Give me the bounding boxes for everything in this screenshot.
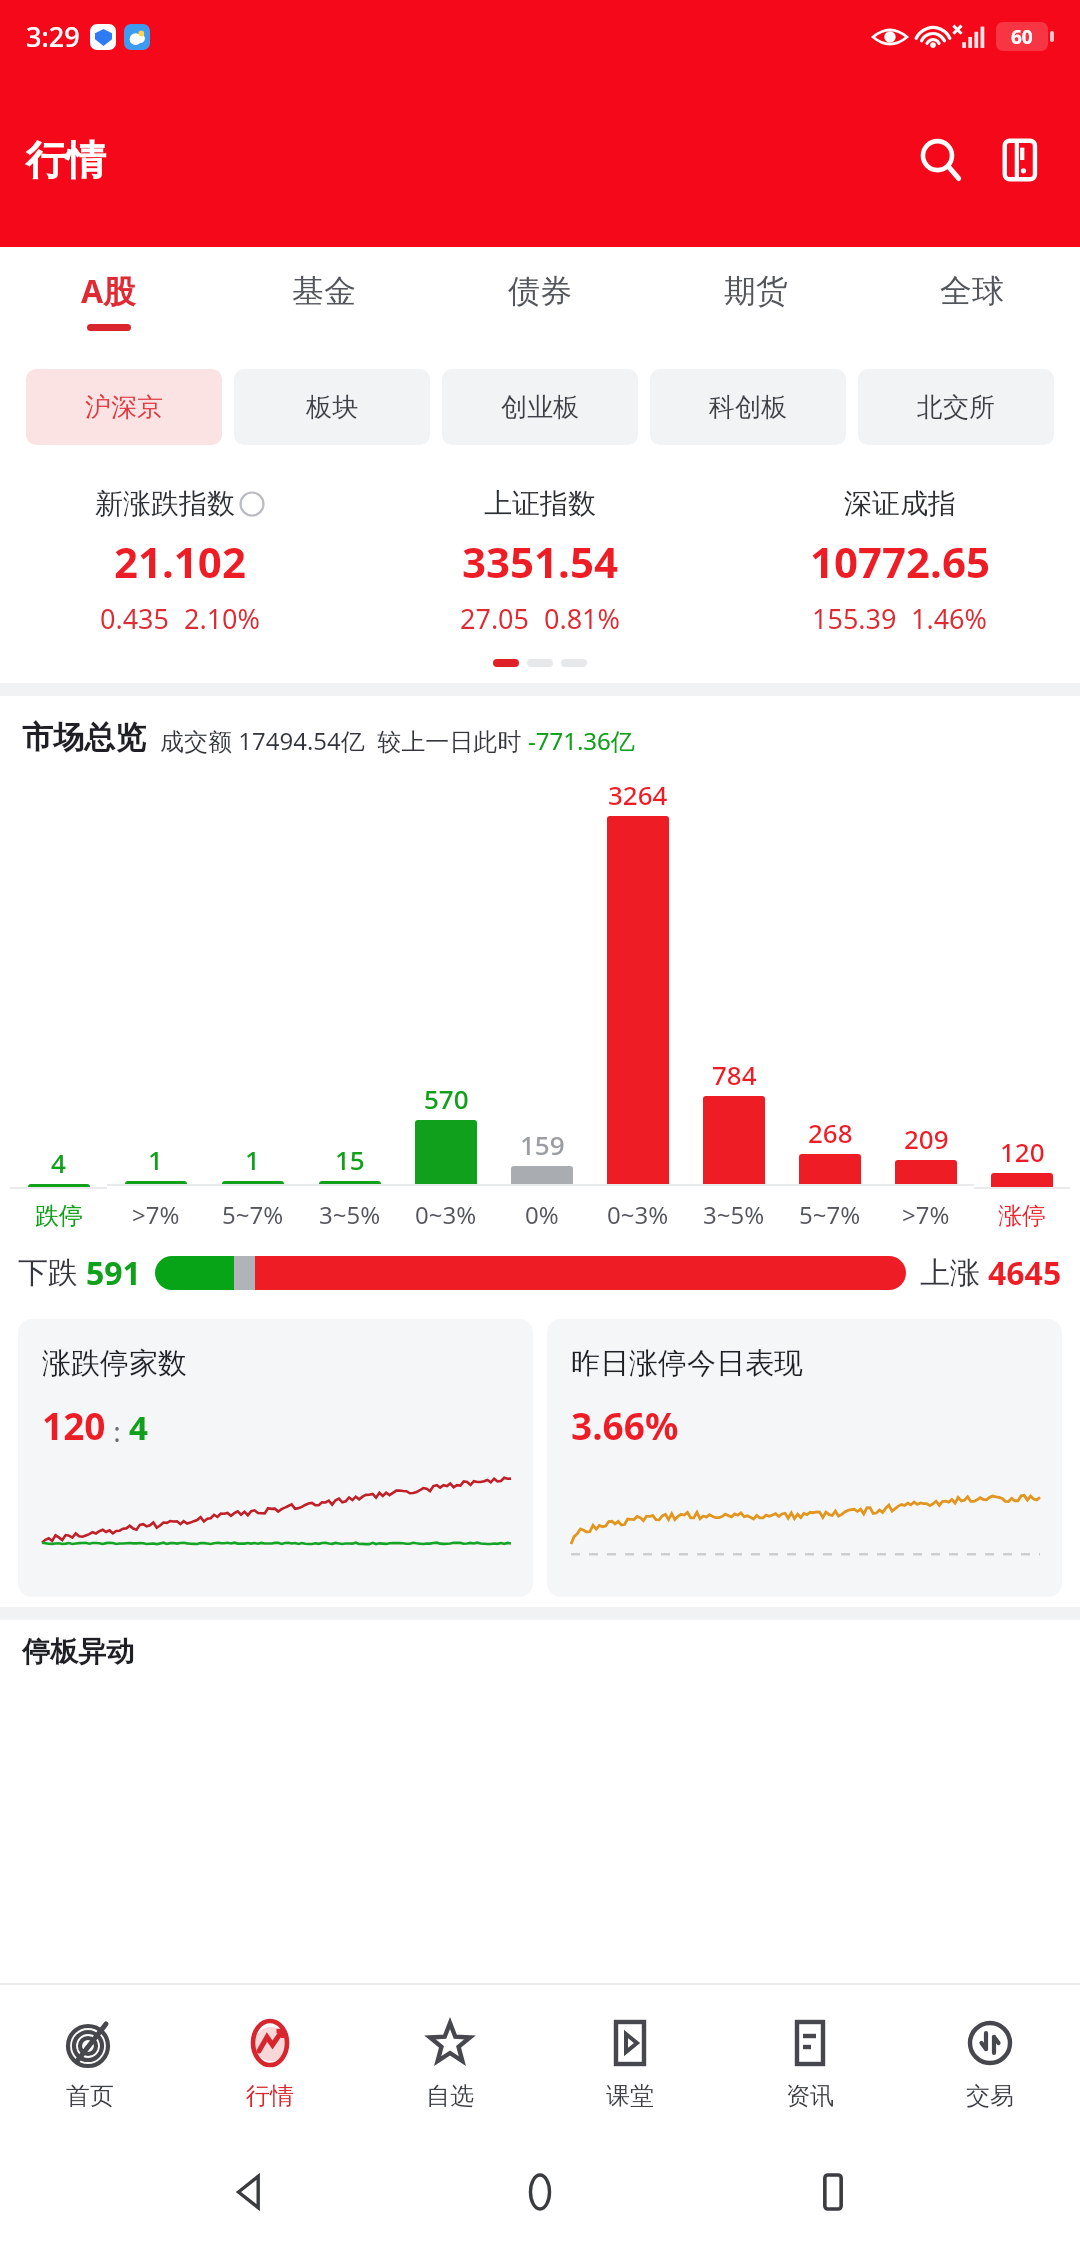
staticText: 209 bbox=[904, 1121, 949, 1156]
button[interactable]: 昨日涨停今日表现 bbox=[547, 1319, 1062, 1597]
staticText: 4 bbox=[129, 1405, 148, 1450]
button[interactable]: 上证指数 bbox=[360, 486, 720, 637]
staticText: 0.81% bbox=[544, 600, 621, 637]
staticText: 上涨 bbox=[920, 1254, 980, 1292]
staticText: 21.102 bbox=[114, 533, 246, 590]
staticText: 5~7% bbox=[799, 1198, 861, 1231]
button[interactable]: 基金 bbox=[216, 247, 432, 352]
staticText: 上证指数 bbox=[484, 486, 596, 521]
staticText: 板块 bbox=[306, 391, 358, 424]
button[interactable]: 板块 bbox=[234, 369, 430, 445]
staticText: 27.05 bbox=[460, 600, 530, 637]
button[interactable]: Back bbox=[203, 2147, 293, 2237]
button[interactable]: 资讯 bbox=[720, 1985, 900, 2140]
staticText: 沪深京 bbox=[85, 391, 163, 424]
button[interactable]: 北交所 bbox=[858, 369, 1054, 445]
staticText: 120 bbox=[42, 1400, 106, 1450]
staticText: 期货 bbox=[724, 271, 788, 311]
staticText: 停板异动 bbox=[22, 1634, 134, 1669]
staticText: 昨日涨停今日表现 bbox=[571, 1345, 803, 1382]
staticText: A股 bbox=[81, 269, 136, 313]
staticText: 0% bbox=[525, 1198, 559, 1231]
staticText: 1.46% bbox=[911, 600, 988, 637]
button[interactable]: 自选 bbox=[360, 1985, 540, 2140]
staticText: 资讯 bbox=[786, 2081, 834, 2111]
staticText: 基金 bbox=[292, 271, 356, 311]
staticText: 市场总览 bbox=[22, 718, 146, 757]
staticText: 15 bbox=[335, 1142, 365, 1177]
staticText: 行情 bbox=[246, 2081, 294, 2111]
button[interactable]: Search bbox=[902, 121, 980, 199]
button[interactable]: Widgets bbox=[980, 121, 1058, 199]
staticText: 3351.54 bbox=[462, 533, 618, 590]
staticText: 1 bbox=[148, 1142, 163, 1177]
staticText: 行情 bbox=[26, 135, 106, 185]
staticText: 5~7% bbox=[222, 1198, 284, 1231]
button[interactable]: 债券 bbox=[432, 247, 648, 352]
staticText: 全球 bbox=[940, 271, 1004, 311]
button[interactable]: 涨跌停家数 bbox=[18, 1319, 533, 1597]
button[interactable]: 期货 bbox=[648, 247, 864, 352]
staticText: 下跌 bbox=[18, 1254, 78, 1292]
staticText: 3:29 bbox=[26, 18, 80, 55]
staticText: 784 bbox=[712, 1057, 757, 1092]
staticText: 3~5% bbox=[703, 1198, 765, 1231]
button[interactable]: Recents bbox=[788, 2147, 878, 2237]
staticText: 课堂 bbox=[606, 2081, 654, 2111]
staticText: 涨停 bbox=[998, 1201, 1046, 1231]
staticText: 交易 bbox=[966, 2081, 1014, 2111]
button[interactable]: 行情 bbox=[180, 1985, 360, 2140]
staticText: 570 bbox=[424, 1081, 469, 1116]
staticText: >7% bbox=[902, 1198, 950, 1231]
button[interactable]: 课堂 bbox=[540, 1985, 720, 2140]
staticText: 591 bbox=[86, 1251, 141, 1295]
staticText: 155.39 bbox=[812, 600, 897, 637]
staticText: 0.435 bbox=[100, 600, 170, 637]
staticText: 0~3% bbox=[415, 1198, 477, 1231]
staticText: 3~5% bbox=[319, 1198, 381, 1231]
staticText: 2.10% bbox=[184, 600, 261, 637]
staticText: 债券 bbox=[508, 271, 572, 311]
staticText: : bbox=[106, 1412, 129, 1450]
staticText: 1 bbox=[245, 1142, 260, 1177]
staticText: 60 bbox=[1011, 24, 1033, 50]
staticText: 首页 bbox=[66, 2081, 114, 2111]
staticText: 新涨跌指数 bbox=[95, 486, 235, 521]
button[interactable]: 全球 bbox=[864, 247, 1080, 352]
staticText: 3.66% bbox=[571, 1400, 679, 1450]
button[interactable]: 沪深京 bbox=[26, 369, 222, 445]
staticText: 0~3% bbox=[607, 1198, 669, 1231]
staticText: 自选 bbox=[426, 2081, 474, 2111]
staticText: 北交所 bbox=[917, 391, 995, 424]
staticText: 159 bbox=[520, 1127, 565, 1162]
staticText: 涨跌停家数 bbox=[42, 1345, 187, 1382]
button[interactable]: 科创板 bbox=[650, 369, 846, 445]
staticText: 4 bbox=[51, 1145, 66, 1180]
staticText: 4645 bbox=[988, 1251, 1062, 1295]
button[interactable]: 首页 bbox=[0, 1985, 180, 2140]
button[interactable]: Home bbox=[495, 2147, 585, 2237]
staticText: 3264 bbox=[608, 777, 668, 812]
staticText: 科创板 bbox=[709, 391, 787, 424]
staticText: 成交额 17494.54亿 较上一日此时 bbox=[160, 724, 528, 757]
staticText: 跌停 bbox=[35, 1201, 83, 1231]
staticText: 120 bbox=[1000, 1134, 1045, 1169]
staticText: 10772.65 bbox=[810, 533, 990, 590]
staticText: 创业板 bbox=[501, 391, 579, 424]
button[interactable]: 创业板 bbox=[442, 369, 638, 445]
button[interactable]: 交易 bbox=[900, 1985, 1080, 2140]
staticText: >7% bbox=[132, 1198, 180, 1231]
button[interactable]: A股 bbox=[0, 247, 216, 352]
staticText: 268 bbox=[808, 1115, 853, 1150]
button[interactable]: 深证成指 bbox=[720, 486, 1080, 637]
staticText: 深证成指 bbox=[844, 486, 956, 521]
staticText: -771.36亿 bbox=[528, 724, 635, 757]
button[interactable]: 新涨跌指数 bbox=[0, 486, 360, 637]
